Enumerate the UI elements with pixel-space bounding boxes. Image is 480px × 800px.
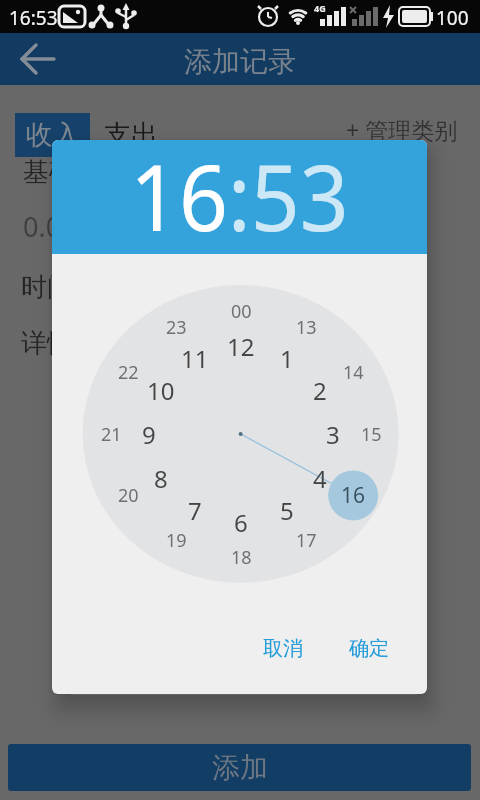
button[interactable]: 添加 [8,744,471,791]
staticText: 16:53 [9,5,58,31]
staticText: 1 [280,342,294,375]
staticText: 基础 [23,156,75,189]
staticText: 0.0 [23,208,62,245]
staticText: 100 [436,5,469,31]
button[interactable]: 取消 [263,636,303,661]
staticText: + 管理类别 [346,114,458,145]
staticText: 16 [341,481,366,510]
staticText: 时间 [21,271,73,304]
staticText: 详情 [21,327,73,360]
staticText: 18 [231,545,252,570]
staticText: 00 [231,299,252,324]
staticText: 6 [234,506,248,539]
staticText: 19 [166,528,187,553]
staticText: 2 [313,374,327,407]
staticText: 20 [118,483,139,508]
staticText: 15 [361,422,382,447]
button[interactable]: 收入 [15,113,90,157]
staticText: 23 [166,315,187,340]
staticText: 9 [142,418,156,451]
button[interactable]: 支出 [21,105,241,165]
button[interactable]: + 管理类别 [292,99,480,159]
staticText: 3 [326,418,340,451]
staticText: 7 [188,494,202,527]
staticText: 12 [227,330,255,363]
staticText: 添加记录 [184,44,296,79]
staticText: 确定 [349,636,389,661]
staticText: 8 [154,462,168,495]
staticText: 添加 [212,750,268,785]
staticText: 收入 [26,118,80,152]
staticText: 22 [118,360,139,385]
staticText: 取消 [263,636,303,661]
staticText: 4G [314,2,326,14]
button[interactable]: 确定 [349,636,389,661]
staticText: 16:53 [130,140,349,248]
staticText: 5 [280,494,294,527]
button[interactable] [0,33,56,85]
staticText: 4 [313,462,327,495]
staticText: 13 [296,315,317,340]
staticText: 11 [181,342,209,375]
staticText: 10 [147,374,175,407]
staticText: 17 [296,528,317,553]
staticText: 21 [101,422,122,447]
staticText: 支出 [104,118,158,152]
staticText: 14 [343,360,364,385]
